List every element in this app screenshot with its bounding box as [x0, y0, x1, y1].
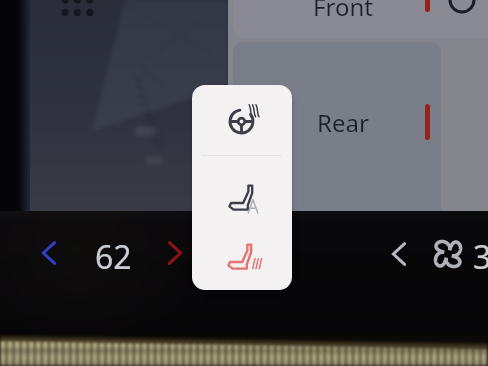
button[interactable]: Rear: [233, 42, 441, 213]
staticText: Front: [313, 0, 373, 23]
button[interactable]: Increase temperature: [155, 233, 195, 273]
button[interactable]: Steering wheel heater: [192, 85, 292, 155]
button[interactable]: Automatic seat heater: [192, 156, 292, 223]
button[interactable]: Decrease temperature: [29, 233, 69, 273]
button[interactable]: Seat heater on: [192, 223, 292, 290]
staticText: Rear: [317, 106, 369, 139]
button[interactable]: Front: [233, 0, 488, 39]
staticText: 62: [95, 235, 132, 279]
button[interactable]: Decrease fan speed: [379, 234, 419, 274]
button[interactable]: Fan speed: [430, 236, 466, 272]
staticText: 3: [473, 235, 488, 279]
